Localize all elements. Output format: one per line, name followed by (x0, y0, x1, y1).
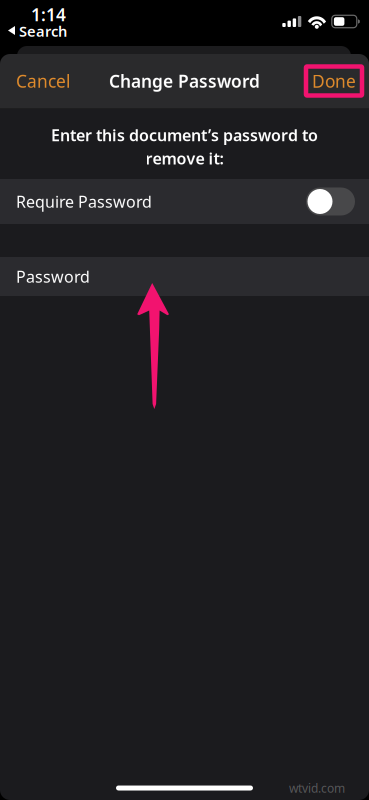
staticText: 1:14 (31, 3, 66, 26)
staticText: Require Password (16, 191, 152, 212)
button[interactable]: Password (0, 257, 369, 296)
staticText: remove it: (145, 148, 223, 169)
staticText: wtvid.com (289, 780, 345, 796)
button[interactable]: Cancel (0, 59, 86, 102)
staticText: Cancel (16, 69, 70, 92)
staticText: Change Password (109, 69, 260, 92)
staticText: Password (16, 266, 90, 287)
staticText: Search (19, 21, 67, 41)
button[interactable]: Back to Search (0, 22, 67, 40)
button[interactable]: Done (306, 66, 369, 95)
button[interactable]: Require Password (0, 179, 369, 224)
staticText: Enter this document’s password to (51, 124, 318, 146)
staticText: Done (312, 69, 356, 92)
